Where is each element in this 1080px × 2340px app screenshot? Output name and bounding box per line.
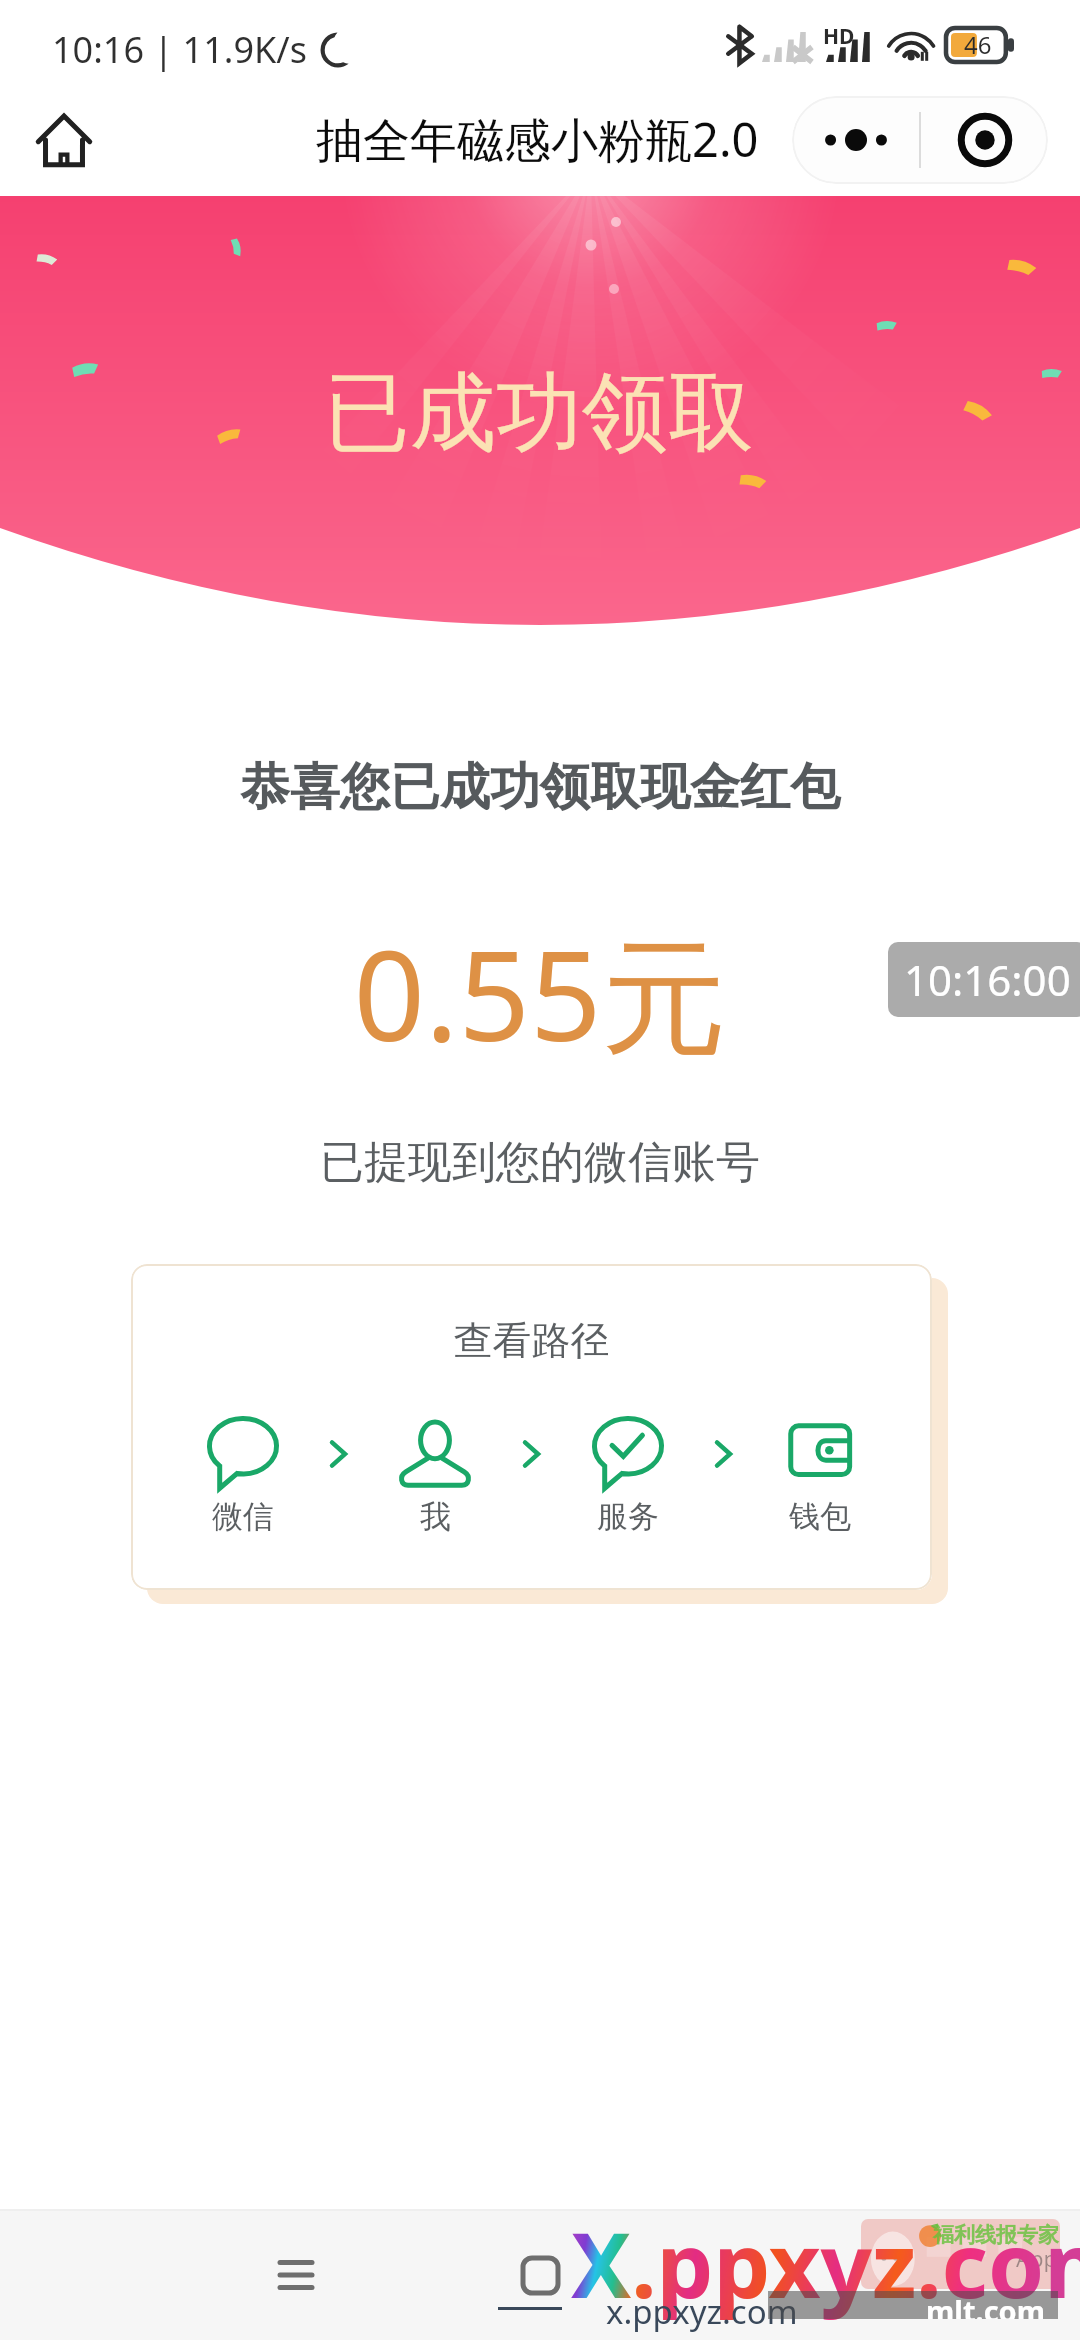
- staticText: HD: [823, 22, 855, 51]
- button[interactable]: 微信: [193, 1413, 293, 1536]
- staticText: 已提现到您的微信账号: [0, 1135, 1080, 1190]
- button[interactable]: 钱包: [770, 1413, 870, 1536]
- staticText: App: [1016, 2243, 1058, 2273]
- staticText: mlt.com: [926, 2291, 1046, 2319]
- staticText: 我: [420, 1497, 451, 1536]
- staticText: X.ppxyz.com: [571, 2202, 1080, 2325]
- staticText: 钱包: [789, 1497, 851, 1536]
- staticText: 服务: [597, 1497, 659, 1536]
- button[interactable]: Home: [24, 100, 104, 180]
- staticText: 福利线报专家: [933, 2222, 1059, 2248]
- staticText: x.ppxyz.com: [606, 2289, 798, 2334]
- staticText: 恭喜您已成功领取现金红包: [0, 756, 1080, 819]
- staticText: 查看路径: [131, 1316, 932, 1365]
- staticText: 46: [964, 28, 992, 61]
- button[interactable]: More options: [792, 96, 919, 184]
- staticText: 0.55元: [0, 907, 1080, 1078]
- staticText: 抽全年磁感小粉瓶2.0: [316, 107, 759, 171]
- button[interactable]: Menu: [251, 2230, 341, 2320]
- button[interactable]: Close mini program: [921, 96, 1048, 184]
- staticText: 10:16:00: [904, 951, 1071, 1008]
- button[interactable]: Recent apps: [495, 2230, 585, 2320]
- button[interactable]: 我: [385, 1413, 485, 1536]
- staticText: 10:16 | 11.9K/s: [52, 25, 307, 74]
- staticText: 微信: [212, 1497, 274, 1536]
- button[interactable]: 服务: [578, 1413, 678, 1536]
- staticText: 已成功领取: [324, 359, 754, 467]
